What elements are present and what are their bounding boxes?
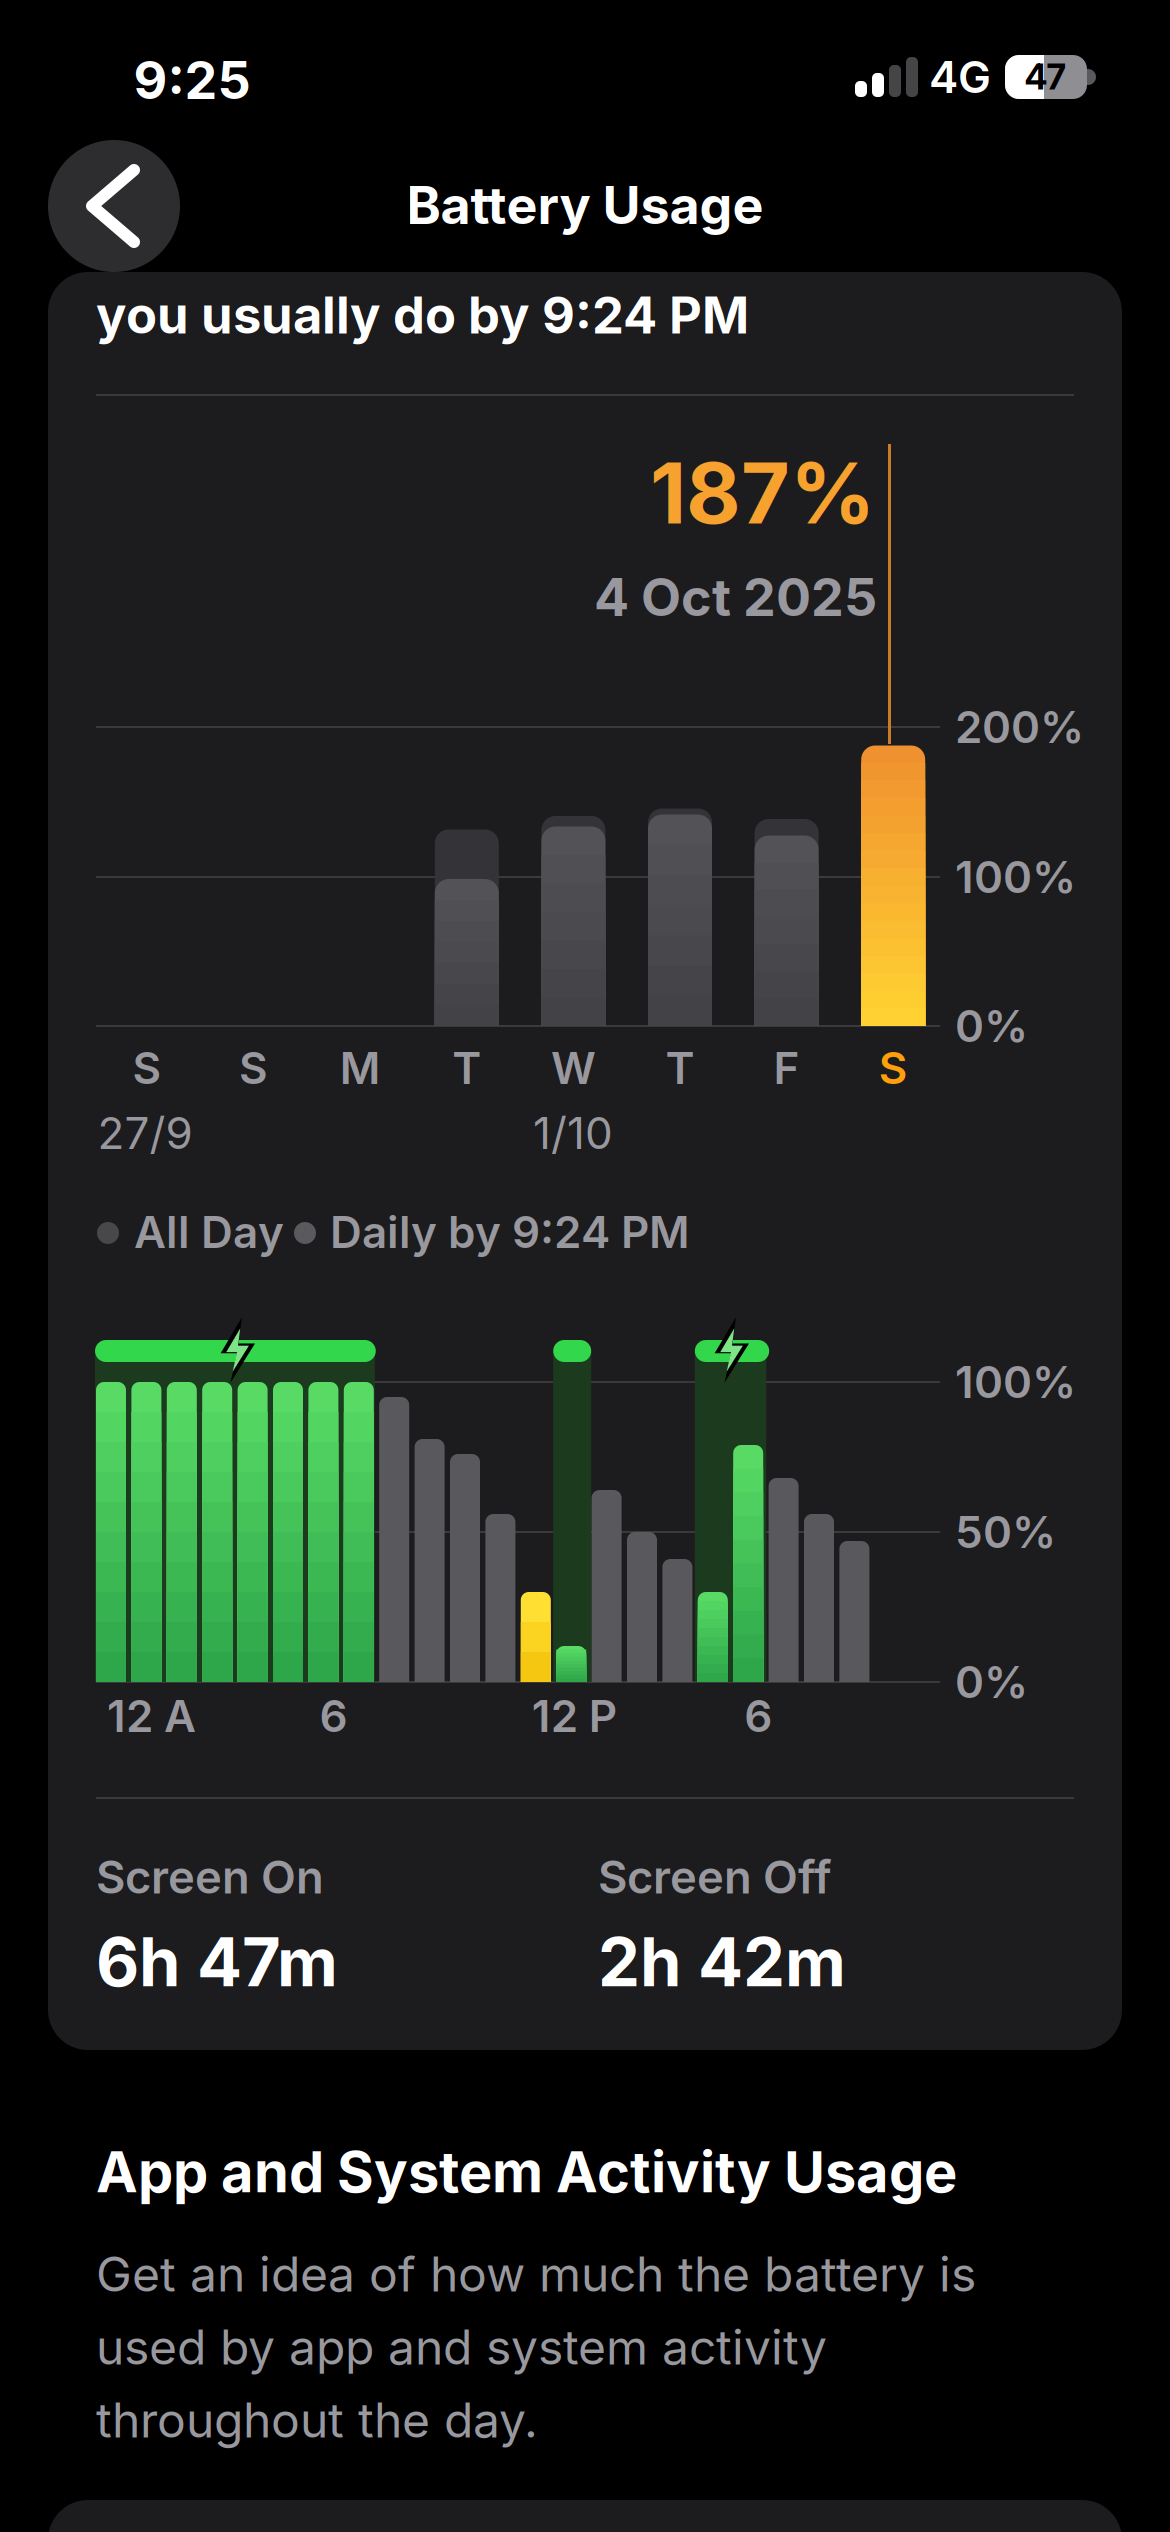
staticText: 12 P [532,1690,617,1742]
staticText: you usually do by 9:24 PM [96,285,749,345]
staticText: 1/10 [533,1107,613,1159]
staticText: 200% [955,701,1084,753]
staticText: 4 Oct 2025 [594,566,877,628]
staticText: All Day [134,1206,284,1258]
staticText: S [879,1042,908,1094]
staticText: 100% [955,1356,1076,1408]
staticText: Daily by 9:24 PM [330,1206,690,1258]
staticText: M [340,1042,381,1094]
staticText: 6 [319,1690,347,1742]
staticText: 47 [1024,57,1065,97]
staticText: Screen Off [598,1850,832,1904]
staticText: T [665,1042,694,1094]
staticText: T [452,1042,481,1094]
staticText: S [132,1042,161,1094]
staticText: S [239,1042,268,1094]
staticText: 27/9 [97,1107,192,1159]
staticText: 6h 47m [96,1923,338,2001]
staticText: 2h 42m [598,1923,846,2001]
staticText: 50% [955,1506,1056,1558]
staticText: 6 [744,1690,772,1742]
staticText: App and System Activity Usage [96,2139,957,2205]
staticText: 187% [650,443,875,543]
button[interactable]: Back [48,140,180,272]
staticText: 100% [955,851,1076,903]
staticText: 0% [955,1000,1028,1052]
staticText: 4G [929,51,991,103]
staticText: 0% [955,1656,1028,1708]
staticText: Battery Usage [406,174,763,236]
staticText: Screen On [96,1850,324,1904]
staticText: 9:25 [133,49,250,111]
staticText: used by app and system activity [96,2319,827,2375]
staticText: 12 A [107,1690,196,1742]
staticText: Get an idea of how much the battery is [96,2246,976,2302]
staticText: throughout the day. [96,2392,538,2448]
staticText: F [774,1042,800,1094]
staticText: W [551,1042,596,1094]
